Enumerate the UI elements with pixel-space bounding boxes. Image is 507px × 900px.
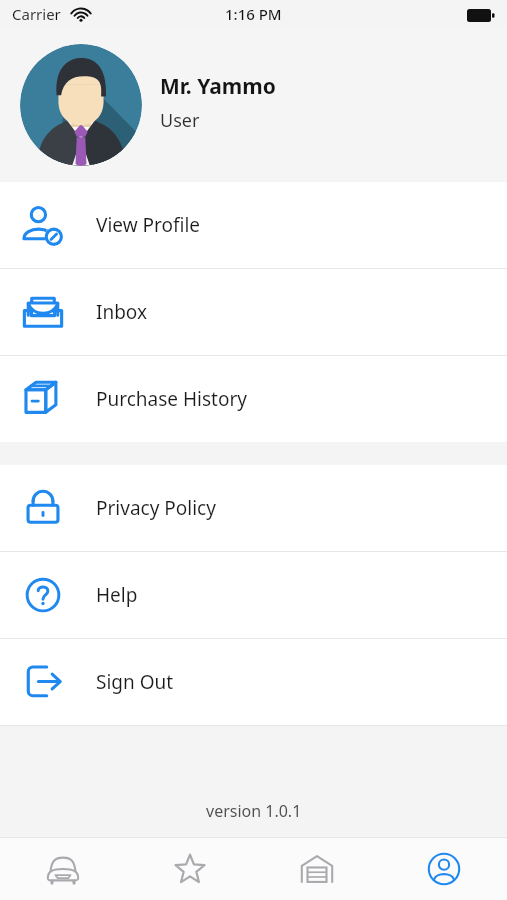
button[interactable]: Dealers: [253, 838, 380, 900]
button[interactable]: Help: [0, 552, 507, 638]
staticText: Sign Out: [96, 669, 174, 695]
button[interactable]: Purchase History: [0, 356, 507, 442]
staticText: Inbox: [96, 299, 148, 325]
staticText: Carrier: [12, 4, 61, 24]
staticText: User: [160, 108, 200, 133]
button[interactable]: Profile: [380, 838, 507, 900]
staticText: 1:16 PM: [225, 4, 282, 24]
staticText: Help: [96, 582, 138, 608]
button[interactable]: View Profile: [0, 182, 507, 268]
button[interactable]: Privacy Policy: [0, 465, 507, 551]
button[interactable]: Favorites: [126, 838, 253, 900]
staticText: Purchase History: [96, 386, 247, 412]
button[interactable]: Vehicles: [0, 838, 126, 900]
staticText: View Profile: [96, 212, 201, 238]
staticText: Privacy Policy: [96, 495, 216, 521]
button[interactable]: Sign Out: [0, 639, 507, 725]
staticText: version 1.0.1: [206, 800, 302, 822]
button[interactable]: Inbox: [0, 269, 507, 355]
staticText: Mr. Yammo: [160, 72, 276, 101]
